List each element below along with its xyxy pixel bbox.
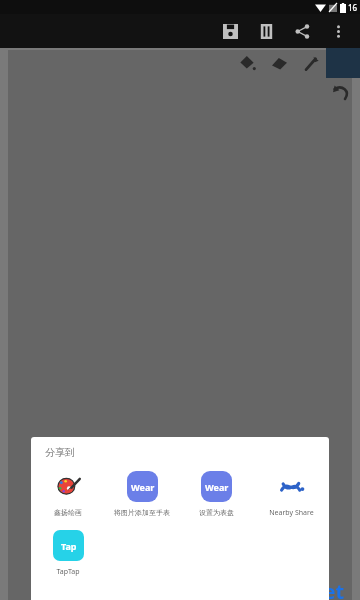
- button[interactable]: Undo: [328, 80, 354, 106]
- staticText: Wear: [205, 481, 229, 493]
- staticText: 设置为表盘: [199, 508, 234, 517]
- staticText: TapTap: [56, 567, 80, 577]
- button[interactable]: Nearby Share: [254, 471, 329, 518]
- button[interactable]: Tap: [31, 530, 105, 577]
- button[interactable]: 鑫扬绘画: [31, 471, 105, 517]
- button[interactable]: Layers: [248, 14, 284, 48]
- staticText: 鑫扬绘画: [54, 508, 82, 517]
- button[interactable]: Save: [212, 14, 248, 48]
- staticText: www.mz6.net: [208, 578, 345, 600]
- staticText: 将图片添加至手表: [114, 508, 170, 517]
- staticText: 16: [348, 2, 358, 13]
- button[interactable]: More options: [320, 14, 356, 48]
- staticText: 分享到: [45, 446, 75, 459]
- staticText: Nearby Share: [269, 508, 314, 518]
- button[interactable]: Fill: [234, 49, 260, 77]
- staticText: Wear: [131, 481, 155, 493]
- button[interactable]: Wear: [105, 471, 179, 517]
- button[interactable]: Color picker: [298, 49, 324, 77]
- button[interactable]: Eraser: [266, 49, 292, 77]
- button[interactable]: Wear: [179, 471, 254, 517]
- staticText: Tap: [61, 540, 77, 552]
- button[interactable]: Share: [284, 14, 320, 48]
